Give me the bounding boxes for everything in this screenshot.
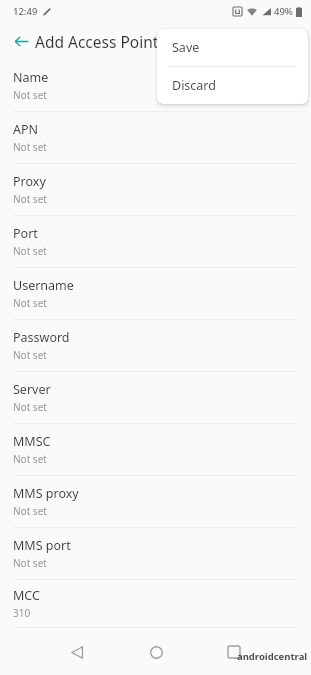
staticText: 310 (13, 606, 31, 620)
staticText: Not set (13, 244, 47, 258)
staticText: APN (13, 121, 39, 138)
button[interactable]: MCC (0, 580, 311, 628)
button[interactable]: Back (7, 27, 35, 55)
button[interactable]: MMSC (0, 424, 311, 476)
staticText: MMS port (13, 537, 71, 554)
button[interactable]: Password (0, 320, 311, 372)
button[interactable]: Recents (219, 637, 249, 667)
staticText: Username (13, 277, 74, 294)
button[interactable]: Proxy (0, 164, 311, 216)
button[interactable]: Server (0, 372, 311, 424)
staticText: Not set (13, 504, 47, 518)
button[interactable]: Port (0, 216, 311, 268)
staticText: MCC (13, 587, 40, 604)
staticText: Not set (13, 296, 47, 310)
staticText: Not set (13, 348, 47, 362)
button[interactable]: Back (62, 637, 92, 667)
button[interactable]: Discard (157, 67, 308, 104)
staticText: Not set (13, 192, 47, 206)
button[interactable]: Username (0, 268, 311, 320)
staticText: androidcentral (237, 650, 308, 663)
staticText: Add Access Point (35, 31, 159, 52)
staticText: MMSC (13, 433, 51, 450)
staticText: Name (13, 69, 49, 86)
staticText: Server (13, 381, 51, 398)
staticText: 49% (274, 5, 293, 18)
staticText: Proxy (13, 173, 46, 190)
button[interactable]: MMS proxy (0, 476, 311, 528)
staticText: Password (13, 329, 70, 346)
staticText: Not set (13, 400, 47, 414)
staticText: Discard (172, 77, 216, 94)
button[interactable]: APN (0, 112, 311, 164)
staticText: Not set (13, 88, 47, 102)
button[interactable]: Name (0, 60, 311, 112)
staticText: Not set (13, 452, 47, 466)
staticText: Not set (13, 140, 47, 154)
staticText: Not set (13, 556, 47, 570)
staticText: 12:49 (13, 5, 38, 18)
staticText: Port (13, 225, 38, 242)
button[interactable]: MMS port (0, 528, 311, 580)
button[interactable]: Home (141, 637, 171, 667)
staticText: MMS proxy (13, 485, 79, 502)
staticText: Save (172, 39, 200, 56)
button[interactable]: Save (157, 29, 308, 66)
